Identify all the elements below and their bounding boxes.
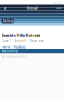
staticText: Gallery [3, 19, 13, 23]
staticText: 9:41 [3, 0, 10, 5]
staticText: Seaside Villa Retreat [2, 33, 41, 38]
staticText: Coast 7 · Sleeps 6 · Ocean view [2, 39, 44, 43]
staticText: ••• [56, 5, 62, 11]
staticText: Wi-Fi [3, 46, 10, 49]
button[interactable]: More [56, 5, 62, 11]
staticText: ‹ [4, 4, 6, 12]
button[interactable]: Back [2, 5, 8, 11]
staticText: No dates selected [2, 55, 27, 58]
staticText: ■■▮ [54, 1, 61, 4]
staticText: Detail [26, 5, 37, 11]
button[interactable]: Parking [13, 45, 26, 50]
staticText: Availability [2, 49, 18, 53]
button[interactable]: Wi-Fi [2, 45, 11, 50]
staticText: Parking [14, 46, 25, 49]
